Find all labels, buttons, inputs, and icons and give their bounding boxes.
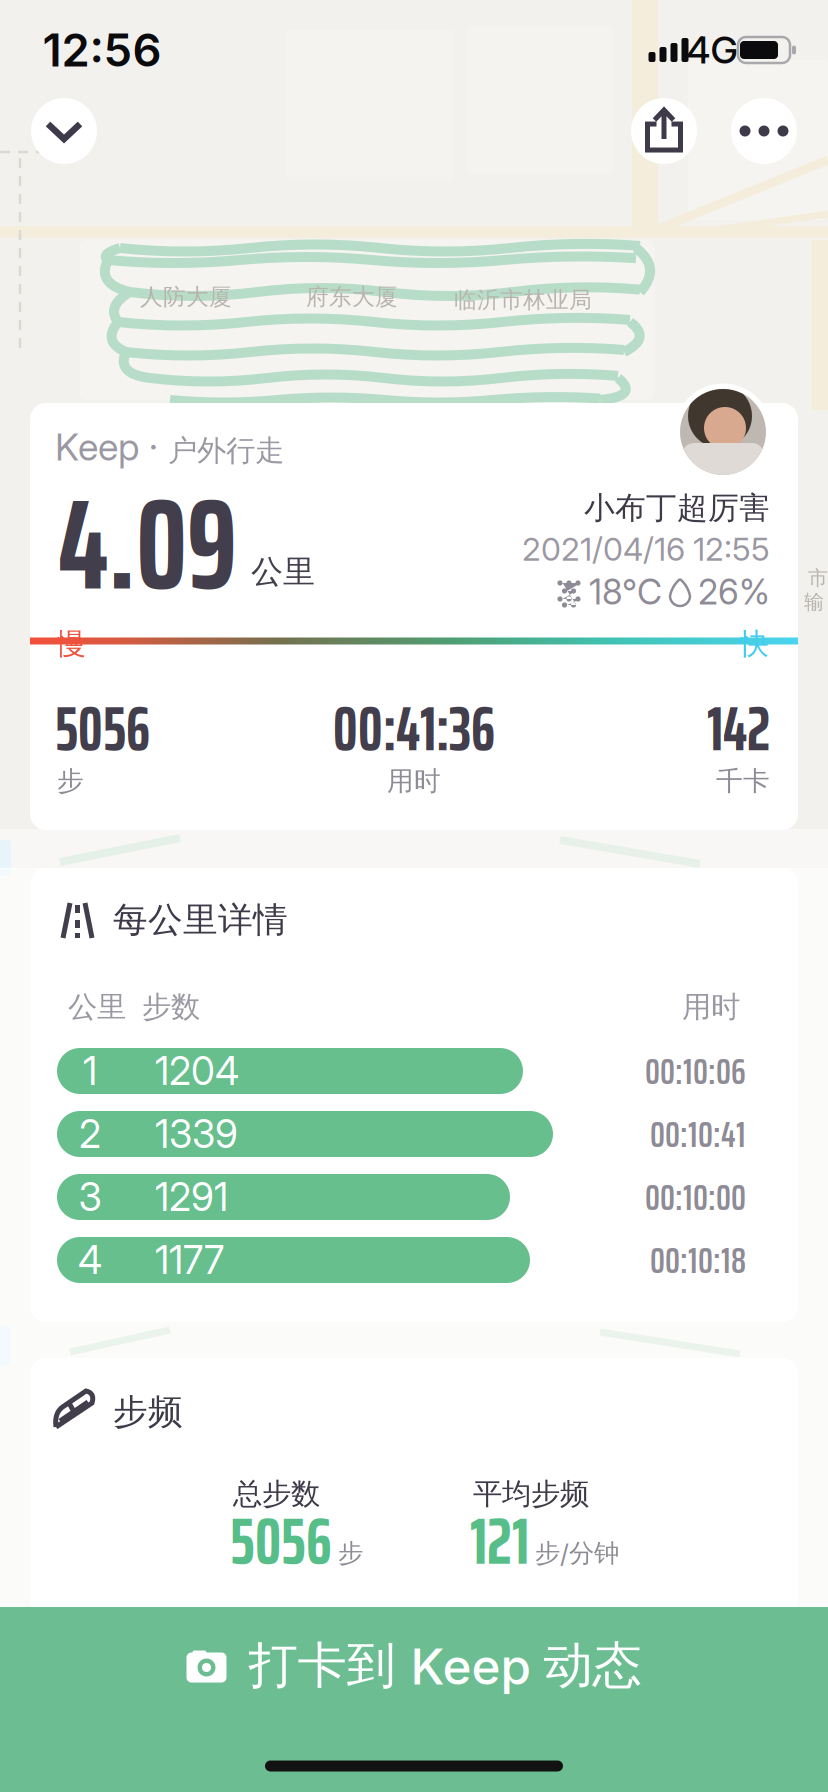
staticText: 18°C [589, 572, 662, 612]
staticText: 平均步频 [473, 1476, 589, 1512]
staticText: 1291 [155, 1174, 228, 1220]
staticText: 总步数 [233, 1476, 320, 1512]
staticText: 临沂市林业局 [454, 286, 592, 314]
staticText: 每公里详情 [113, 899, 288, 941]
staticText: 市 [808, 566, 828, 590]
staticText: 1204 [155, 1048, 239, 1094]
button[interactable]: Share [631, 98, 697, 164]
staticText: 户外行走 [168, 433, 284, 469]
staticText: 5056 [230, 1490, 332, 1592]
staticText: 26% [698, 572, 770, 612]
staticText: 5056 [55, 681, 150, 777]
staticText: 快 [739, 626, 768, 662]
staticText: 府东大厦 [306, 283, 398, 311]
staticText: 2 [79, 1111, 101, 1157]
staticText: Keep · [55, 425, 168, 469]
staticText: 1177 [155, 1237, 224, 1283]
button[interactable]: Close [31, 98, 97, 164]
staticText: 步/分钟 [535, 1538, 619, 1569]
staticText: 输 [804, 590, 824, 614]
staticText: 公里 [251, 552, 315, 591]
staticText: 打卡到 Keep 动态 [248, 1635, 641, 1696]
staticText: 3 [78, 1174, 101, 1220]
staticText: 142 [707, 681, 770, 777]
staticText: 人防大厦 [140, 283, 232, 311]
staticText: 00:10:41 [650, 1105, 746, 1163]
staticText: 00:41:36 [333, 681, 495, 777]
staticText: 用时 [682, 989, 740, 1025]
button[interactable]: More [731, 98, 797, 164]
staticText: 用时 [387, 765, 441, 797]
staticText: 4G [686, 28, 737, 72]
staticText: 00:10:00 [645, 1168, 746, 1226]
staticText: 2021/04/16 12:55 [522, 530, 770, 568]
staticText: 步数 [142, 989, 200, 1025]
staticText: 1 [83, 1048, 97, 1094]
staticText: 步频 [113, 1391, 183, 1433]
staticText: 慢 [56, 626, 85, 662]
staticText: 00:10:06 [645, 1042, 746, 1100]
staticText: 00:10:18 [650, 1231, 746, 1289]
staticText: 千卡 [716, 765, 770, 797]
staticText: 4.09 [58, 443, 237, 645]
button[interactable]: 打卡到 Keep 动态 [0, 1607, 828, 1792]
staticText: 4 [78, 1237, 102, 1283]
staticText: 小布丁超厉害 [584, 489, 770, 527]
staticText: 步 [57, 765, 84, 797]
staticText: 12:56 [42, 23, 161, 77]
staticText: 1339 [155, 1111, 238, 1157]
staticText: 公里 [68, 989, 126, 1025]
staticText: 步 [338, 1538, 363, 1569]
staticText: 121 [470, 1490, 529, 1592]
